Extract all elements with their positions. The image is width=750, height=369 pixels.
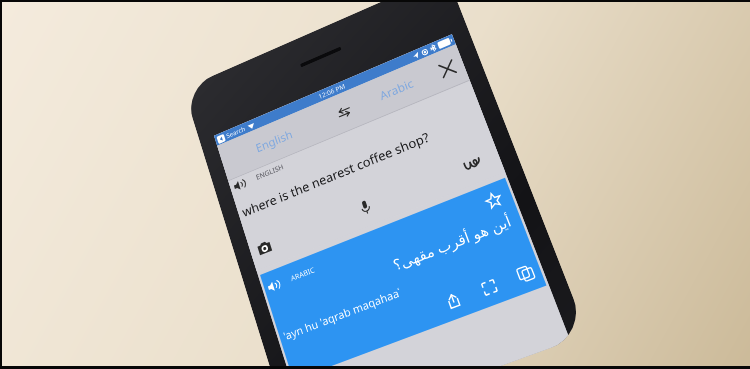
button[interactable]: Share: [442, 289, 464, 312]
staticText: أين هو أقرب مقهى؟: [390, 210, 514, 275]
button[interactable]: Fullscreen: [477, 276, 500, 298]
button[interactable]: Arabic: [355, 57, 439, 122]
staticText: Search: [225, 124, 247, 140]
button[interactable]: Handwriting input: [461, 153, 483, 175]
button[interactable]: Camera input: [254, 237, 274, 258]
staticText: ARABIC: [289, 265, 316, 284]
button[interactable]: Close: [426, 44, 469, 92]
staticText: 'ayn hu 'aqrab maqahaaʿ: [281, 285, 403, 343]
button[interactable]: Voice input: [355, 196, 376, 218]
staticText: where is the nearest coffee shop?: [240, 128, 432, 221]
staticText: 12:06 PM: [317, 81, 347, 101]
button[interactable]: Swap languages: [321, 87, 367, 137]
button[interactable]: Save translation: [483, 189, 505, 212]
button[interactable]: English: [217, 101, 333, 180]
button[interactable]: Copy: [514, 262, 537, 285]
staticText: Arabic: [377, 75, 416, 104]
staticText: ENGLISH: [255, 162, 285, 183]
staticText: English: [254, 126, 295, 156]
